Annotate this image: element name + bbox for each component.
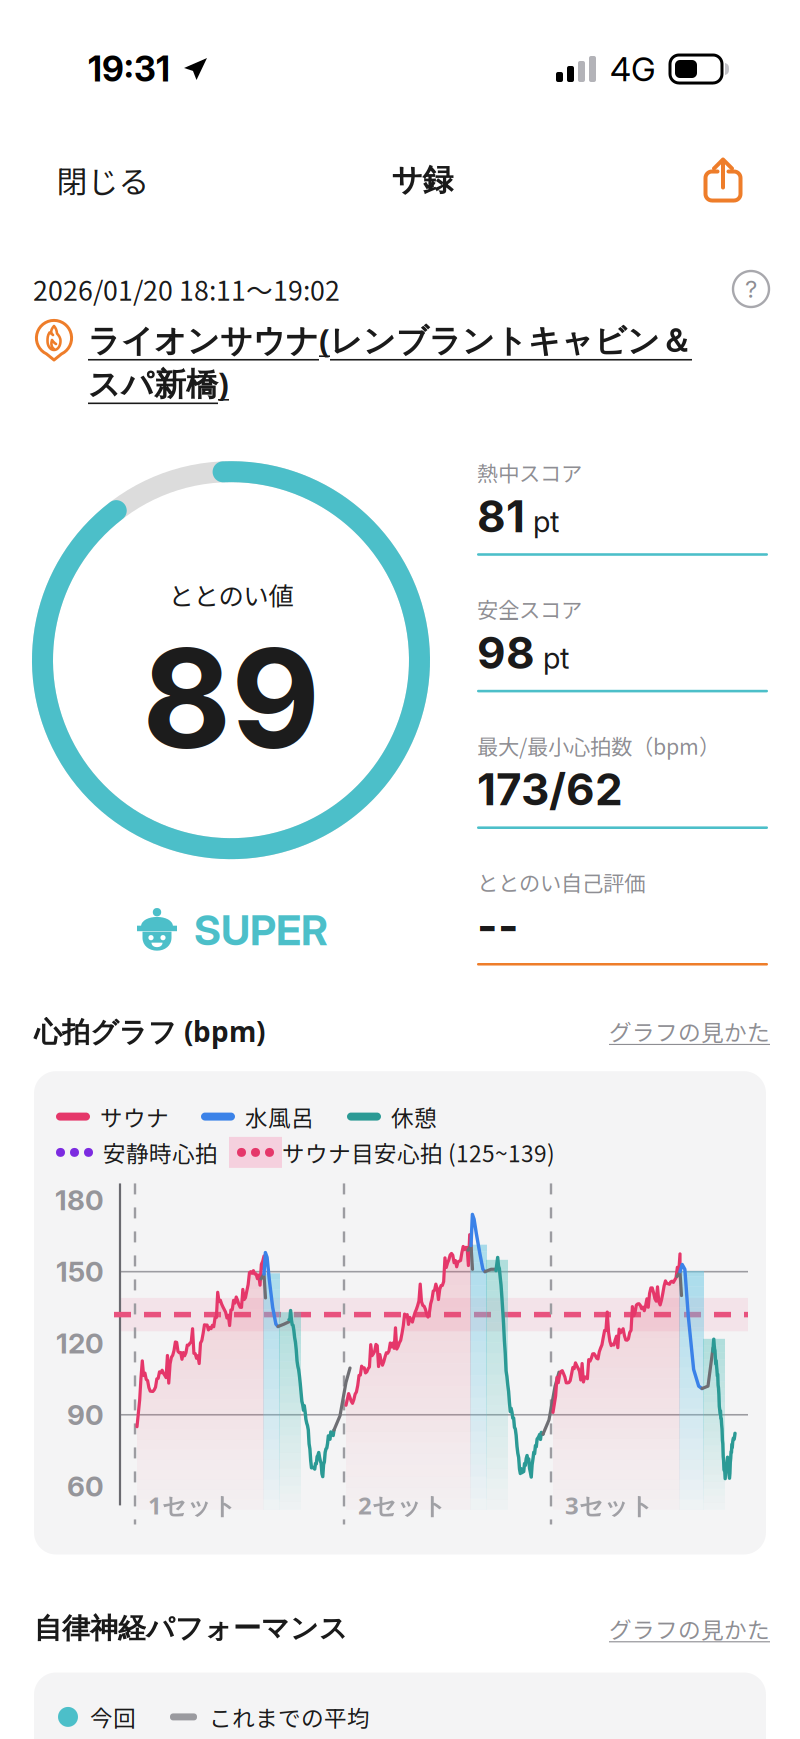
staticText: サウナ目安心拍 (125~139)	[282, 1136, 555, 1169]
staticText: サ録	[391, 161, 453, 199]
staticText: 自律神経パフォーマンス	[34, 1611, 348, 1646]
staticText: 81	[477, 489, 525, 543]
staticText: 今回	[90, 1700, 136, 1733]
staticText: サウナ	[100, 1100, 169, 1133]
staticText: 98	[477, 626, 535, 679]
staticText: 180	[55, 1183, 104, 1217]
staticText: グラフの見かた	[609, 1612, 770, 1645]
staticText: 2セット	[358, 1489, 447, 1521]
staticText: 89	[142, 615, 320, 781]
staticText: 90	[67, 1398, 104, 1432]
staticText: グラフの見かた	[609, 1015, 770, 1048]
staticText: 173/62	[477, 763, 623, 816]
staticText: ととのい値	[168, 576, 293, 613]
staticText: 120	[56, 1326, 104, 1360]
staticText: 最大/最小心拍数（bpm）	[477, 730, 720, 761]
staticText: 60	[67, 1469, 104, 1503]
staticText: これまでの平均	[209, 1700, 370, 1733]
button[interactable]: ライオンサウナ(レンブラントキャビン＆ スパ新橋)	[0, 318, 800, 405]
staticText: 150	[56, 1255, 104, 1289]
staticText: ?	[745, 274, 757, 303]
staticText: --	[477, 899, 519, 952]
staticText: 休憩	[391, 1100, 437, 1133]
staticText: 水風呂	[245, 1100, 314, 1133]
button[interactable]: 閉じる	[28, 135, 178, 224]
staticText: 安全スコア	[477, 593, 582, 624]
staticText: 1セット	[148, 1489, 237, 1521]
staticText: 心拍グラフ (bpm)	[34, 1012, 265, 1050]
staticText: ととのい自己評価	[477, 866, 645, 897]
staticText: 安静時心拍	[103, 1136, 218, 1169]
staticText: 3セット	[565, 1489, 654, 1521]
staticText: pt	[533, 504, 559, 539]
staticText: pt	[543, 640, 569, 676]
staticText: ライオンサウナ(レンブラントキャビン＆ スパ新橋)	[88, 318, 692, 405]
staticText: SUPER	[194, 905, 328, 955]
button[interactable]: 共有	[667, 124, 779, 236]
button[interactable]: ヘルプ	[730, 268, 772, 310]
button[interactable]: グラフの見かた	[609, 1612, 770, 1645]
staticText: 閉じる	[56, 158, 149, 202]
staticText: 4G	[610, 49, 656, 89]
staticText: 19:31	[88, 48, 170, 90]
button[interactable]: グラフの見かた	[609, 1015, 770, 1048]
staticText: 2026/01/20 18:11〜19:02	[33, 270, 340, 308]
staticText: 熱中スコア	[477, 457, 582, 488]
